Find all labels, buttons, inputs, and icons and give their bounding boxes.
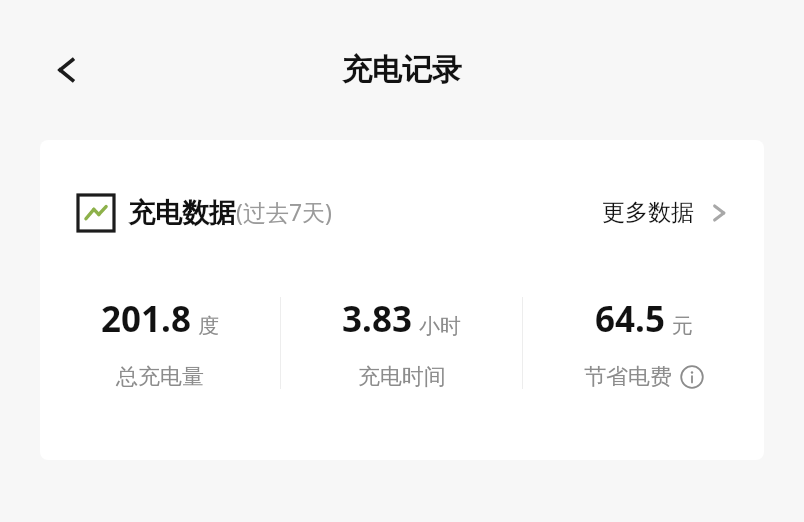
staticText: (过去7天) <box>236 196 332 227</box>
staticText: 元 <box>672 313 693 339</box>
button[interactable]: Back <box>40 41 98 99</box>
staticText: 充电数据 <box>128 196 236 230</box>
staticText: 充电记录 <box>342 51 462 89</box>
staticText: 201.8 <box>101 295 191 343</box>
staticText: 度 <box>198 313 219 339</box>
staticText: 更多数据 <box>602 198 694 227</box>
staticText: 3.83 <box>342 295 412 343</box>
button[interactable]: 3.83 <box>281 295 522 391</box>
staticText: 总充电量 <box>116 363 204 391</box>
staticText: 节省电费 <box>584 363 672 391</box>
button[interactable]: 201.8 <box>40 295 280 391</box>
button[interactable]: 更多数据 <box>598 192 734 233</box>
staticText: 64.5 <box>595 295 665 343</box>
staticText: 充电时间 <box>358 363 446 391</box>
button[interactable]: Info <box>680 365 704 389</box>
staticText: 小时 <box>419 313 461 339</box>
button[interactable]: 64.5 <box>523 295 764 391</box>
